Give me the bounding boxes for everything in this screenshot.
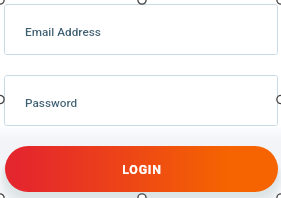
staticText: Password	[25, 96, 78, 110]
button[interactable]: Password	[4, 75, 278, 126]
staticText: Email Address	[25, 25, 101, 39]
button[interactable]: Email Address	[4, 4, 278, 55]
staticText: LOGIN	[122, 163, 162, 177]
button[interactable]: LOGIN	[5, 146, 278, 192]
